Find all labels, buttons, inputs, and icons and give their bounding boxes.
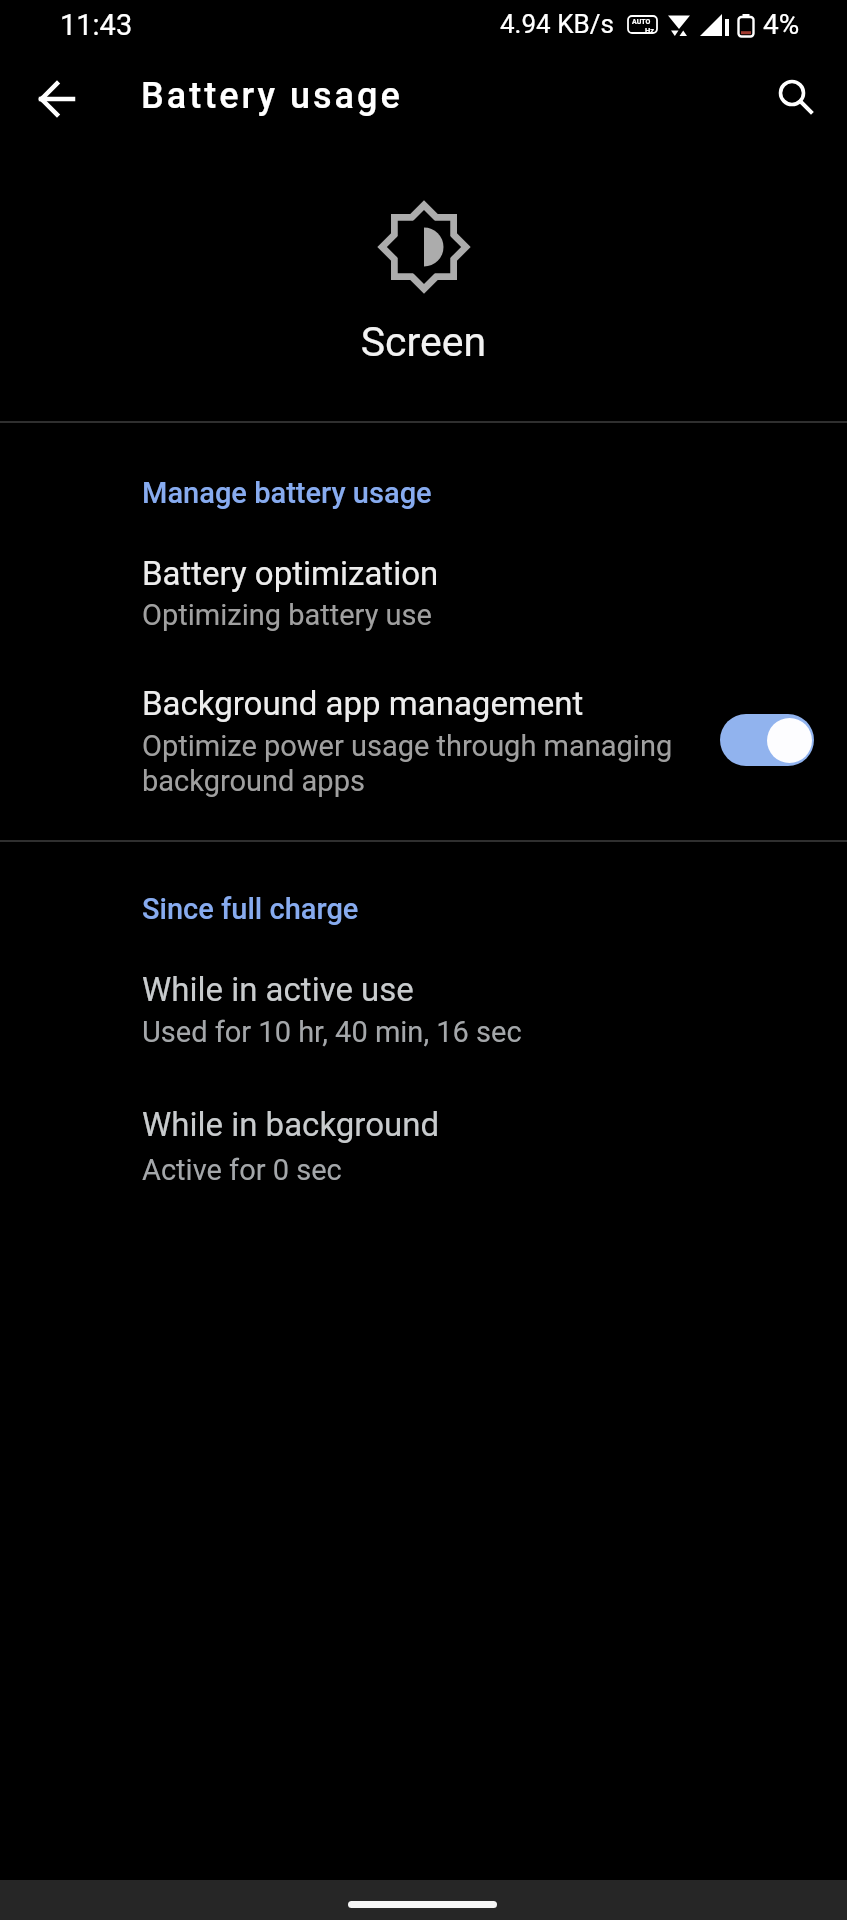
staticText: Battery usage [141,75,403,117]
button[interactable] [762,63,830,131]
staticText: Background app management [142,684,584,723]
staticText: Active for 0 sec [142,1153,342,1187]
staticText: 4% [763,8,800,41]
button[interactable] [22,64,92,134]
button[interactable]: While in background [0,1091,847,1196]
button[interactable]: While in active use [0,956,847,1061]
staticText: Optimize power usage through managing ba… [142,729,673,798]
staticText: While in active use [142,970,414,1009]
staticText: Used for 10 hr, 40 min, 16 sec [142,1015,522,1049]
staticText: Screen [0,318,847,366]
staticText: Since full charge [142,892,359,926]
staticText: 11:43 [60,8,133,42]
staticText: Battery optimization [142,554,439,593]
staticText: Manage battery usage [142,476,432,510]
staticText: While in background [142,1105,440,1144]
staticText: Optimizing battery use [142,598,432,632]
staticText: Hz [645,26,655,35]
button[interactable] [720,714,814,766]
button[interactable]: Background app management [0,670,847,812]
button[interactable]: Battery optimization [0,540,847,645]
staticText: 4.94 KB/s [500,9,614,39]
staticText: AUTO [632,18,651,26]
